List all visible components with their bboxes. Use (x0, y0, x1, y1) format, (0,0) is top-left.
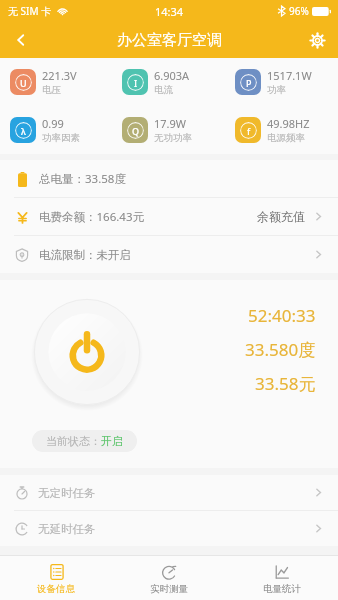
staticText: 办公室客厅空调 (117, 31, 222, 50)
staticText: 221.3V (42, 68, 77, 83)
button[interactable]: f (225, 106, 338, 154)
button[interactable]: Settings (296, 22, 338, 58)
button[interactable]: 设备信息 (0, 556, 112, 600)
staticText: 余额充值 (257, 209, 305, 224)
staticText: U (20, 77, 27, 89)
button[interactable]: 无定时任务 (0, 475, 338, 510)
button[interactable]: 当前状态： (32, 430, 137, 452)
staticText: λ (21, 125, 26, 137)
staticText: P (246, 77, 252, 89)
staticText: 当前状态： (46, 434, 101, 448)
staticText: 33.58元 (255, 372, 316, 395)
button[interactable]: U (0, 58, 112, 106)
staticText: 96% (289, 4, 309, 18)
staticText: f (247, 125, 251, 137)
button[interactable]: 无延时任务 (0, 511, 338, 546)
staticText: 49.98HZ (267, 116, 310, 131)
button[interactable]: 电量统计 (225, 556, 338, 600)
button[interactable]: 实时测量 (112, 556, 225, 600)
staticText: 52:40:33 (248, 304, 316, 327)
staticText: 无定时任务 (38, 486, 96, 500)
button[interactable]: Back (0, 22, 42, 58)
button[interactable]: 电流限制：未开启 (0, 236, 338, 273)
staticText: 功率因素 (42, 132, 80, 144)
staticText: 电流限制：未开启 (39, 248, 131, 262)
button[interactable]: 总电量：33.58度 (0, 160, 338, 197)
button[interactable]: Q (112, 106, 225, 154)
staticText: Q (132, 125, 140, 137)
staticText: 0.99 (42, 116, 64, 131)
staticText: 实时测量 (150, 583, 188, 595)
staticText: 1517.1W (267, 68, 312, 83)
staticText: 电量统计 (263, 583, 301, 595)
staticText: I (134, 77, 138, 89)
staticText: 14:34 (155, 4, 184, 19)
button[interactable]: I (112, 58, 225, 106)
button[interactable]: λ (0, 106, 112, 154)
staticText: 电流 (154, 84, 173, 96)
staticText: 电费余额：166.43元 (39, 209, 144, 225)
button[interactable]: 电费余额：166.43元 (0, 198, 338, 235)
staticText: 6.903A (154, 68, 190, 83)
staticText: 总电量：33.58度 (39, 171, 126, 187)
staticText: 设备信息 (37, 583, 75, 595)
staticText: 开启 (101, 434, 123, 448)
staticText: 功率 (267, 84, 286, 96)
staticText: 无延时任务 (38, 522, 96, 536)
staticText: 电源频率 (267, 132, 305, 144)
staticText: 17.9W (154, 116, 187, 131)
staticText: 33.580度 (245, 338, 316, 361)
staticText: 无功功率 (154, 132, 192, 144)
staticText: 电压 (42, 84, 61, 96)
button[interactable]: Power toggle (31, 296, 143, 408)
button[interactable]: P (225, 58, 338, 106)
staticText: 无 SIM 卡 (8, 4, 52, 18)
